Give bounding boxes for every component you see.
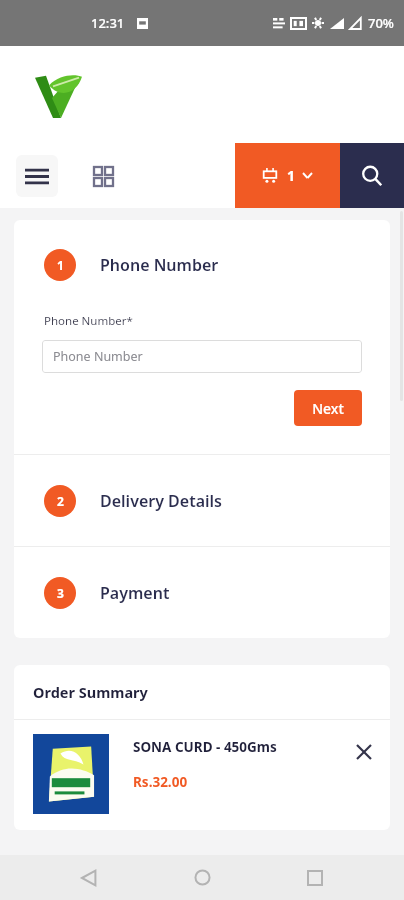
staticText: 3 (57, 585, 64, 601)
button[interactable]: Home (178, 855, 226, 900)
button[interactable]: Next (294, 390, 362, 426)
staticText: Delivery Details (100, 490, 222, 512)
button[interactable]: Remove item (346, 734, 382, 770)
staticText: Phone Number* (44, 313, 133, 329)
button[interactable]: 2 (14, 455, 390, 546)
staticText: 2 (57, 493, 64, 509)
button[interactable]: Menu (16, 155, 58, 197)
staticText: 1 (287, 166, 296, 185)
staticText: Phone Number (53, 348, 143, 365)
button[interactable]: Phone Number (42, 340, 362, 373)
staticText: Phone Number (100, 254, 219, 276)
staticText: 1 (57, 257, 64, 273)
button[interactable]: Search (340, 143, 404, 208)
button[interactable]: Back (65, 855, 113, 900)
button[interactable]: 3 (14, 547, 390, 638)
staticText: Payment (100, 582, 170, 604)
button[interactable]: Recent apps (291, 855, 339, 900)
staticText: Rs.32.00 (133, 773, 188, 791)
staticText: 12:31 (91, 14, 125, 32)
staticText: Next (312, 399, 344, 418)
button[interactable]: Categories (82, 155, 124, 197)
staticText: 70% (368, 14, 394, 32)
button[interactable]: 1 (235, 143, 340, 208)
staticText: SONA CURD - 450Gms (133, 738, 277, 756)
staticText: Order Summary (33, 682, 148, 702)
other: Logo (33, 71, 83, 119)
